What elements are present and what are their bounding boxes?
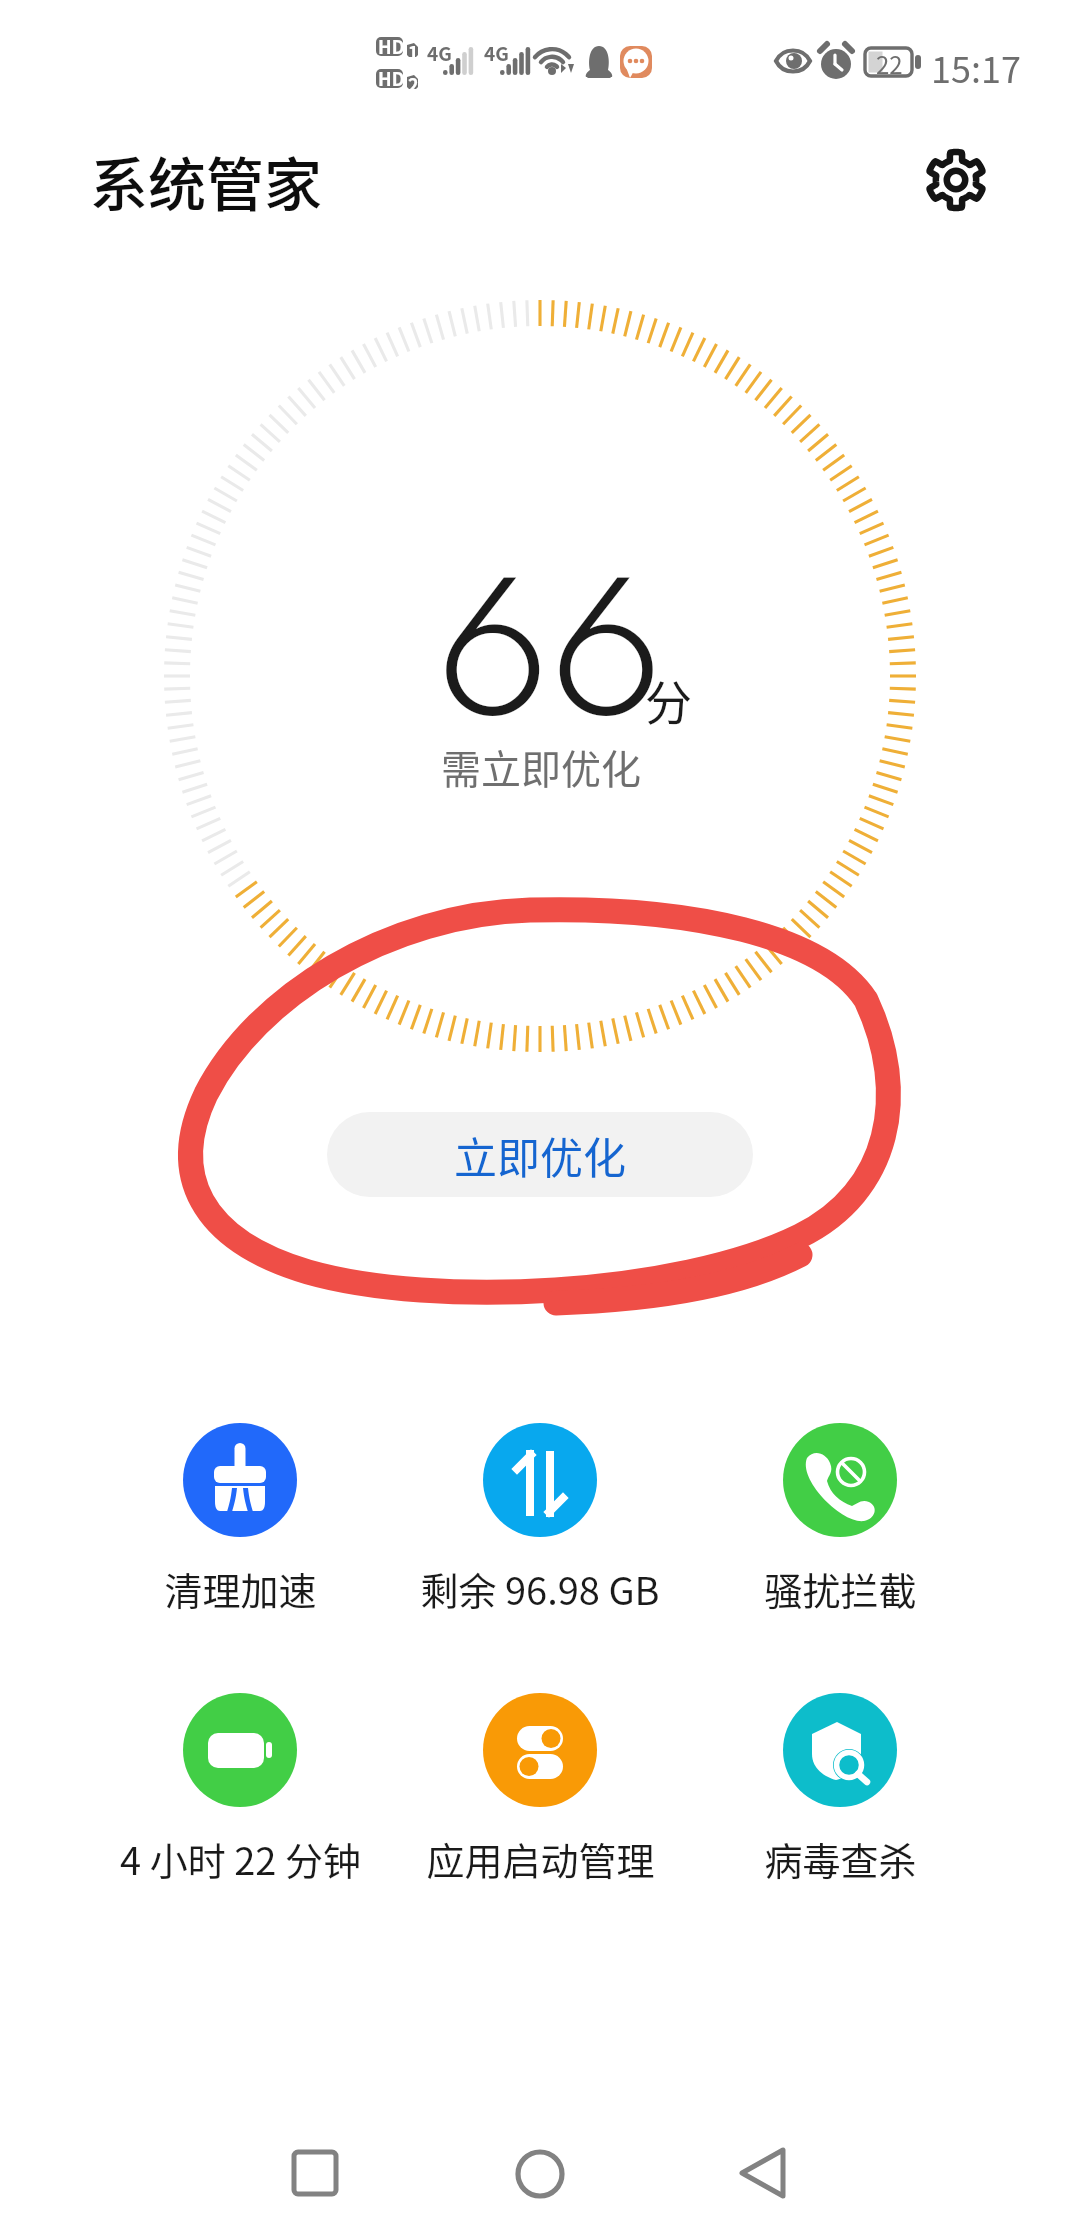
- staticText: 2: [408, 71, 419, 97]
- staticText: 立即优化: [454, 1124, 626, 1186]
- staticText: 应用启动管理: [426, 1831, 655, 1886]
- button[interactable]: Home: [488, 2123, 588, 2223]
- staticText: HD: [378, 65, 405, 91]
- button[interactable]: 4 小时 22 分钟: [100, 1683, 380, 1888]
- button[interactable]: Recents: [265, 2123, 365, 2223]
- staticText: 66: [436, 514, 663, 766]
- staticText: 分: [645, 665, 692, 733]
- staticText: 15:17: [931, 41, 1021, 93]
- button[interactable]: 立即优化: [327, 1112, 753, 1197]
- staticText: 4G: [484, 39, 509, 67]
- button[interactable]: 剩余 96.98 GB: [400, 1413, 680, 1618]
- staticText: 骚扰拦截: [764, 1561, 917, 1616]
- staticText: 4G: [427, 39, 452, 67]
- button[interactable]: 病毒查杀: [700, 1683, 980, 1888]
- staticText: 剩余 96.98 GB: [420, 1561, 660, 1616]
- button[interactable]: 骚扰拦截: [700, 1413, 980, 1618]
- staticText: 需立即优化: [441, 738, 641, 796]
- button[interactable]: 应用启动管理: [400, 1683, 680, 1888]
- button[interactable]: Settings: [908, 132, 1004, 228]
- button[interactable]: 清理加速: [100, 1413, 380, 1618]
- button[interactable]: Back: [714, 2123, 814, 2223]
- staticText: 病毒查杀: [764, 1831, 917, 1886]
- staticText: HD: [378, 33, 405, 59]
- staticText: 22: [876, 46, 903, 81]
- staticText: 清理加速: [164, 1561, 317, 1616]
- staticText: 4 小时 22 分钟: [120, 1831, 361, 1886]
- staticText: 系统管家: [90, 139, 323, 223]
- staticText: 1: [408, 39, 419, 65]
